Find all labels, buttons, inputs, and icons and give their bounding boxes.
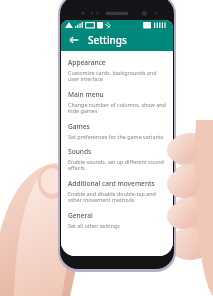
staticText: Sounds [68,147,92,156]
staticText: Enable sounds, set up different sound ef… [68,158,168,172]
staticText: Change number of columns, show and hide … [68,101,168,115]
button[interactable]: Back [66,32,82,48]
staticText: Customize cards, backgrounds and user in… [68,69,168,83]
button[interactable]: Additional card movements [68,179,168,211]
button[interactable]: General [68,211,168,236]
staticText: Set preferences for the game variants [68,133,164,140]
staticText: Main menu [68,90,104,99]
button[interactable]: Main menu [68,90,168,122]
button[interactable]: Appearance [68,58,168,90]
staticText: Games [68,122,90,131]
staticText: Enable and disable double-tap and other … [68,190,168,204]
button[interactable]: Games [68,122,168,147]
staticText: Settings [88,33,127,47]
staticText: Set all other settings [68,222,120,229]
staticText: Appearance [68,58,106,67]
button[interactable]: Sounds [68,147,168,179]
staticText: Additional card movements [68,179,155,188]
staticText: General [68,211,93,220]
